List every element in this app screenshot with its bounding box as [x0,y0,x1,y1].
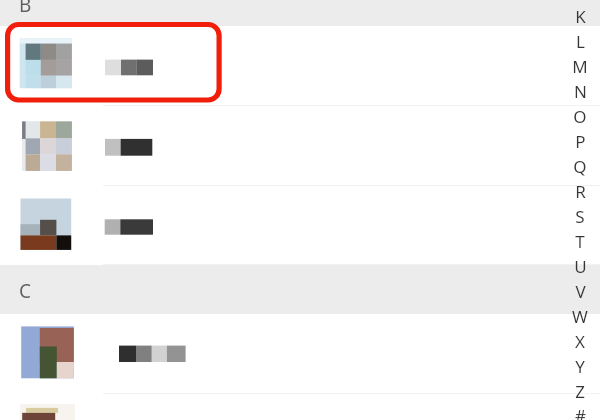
staticText: X [575,330,585,353]
staticText: Q [573,155,587,178]
staticText: B [19,0,32,18]
staticText: W [572,305,588,328]
staticText: V [575,280,586,303]
button[interactable] [0,314,600,394]
staticText: U [574,255,587,278]
staticText: Y [575,355,585,378]
staticText: N [574,80,587,103]
button[interactable]: C [0,265,600,314]
button[interactable] [0,394,600,420]
staticText: # [575,404,586,420]
button[interactable] [0,26,600,106]
staticText: Z [575,380,585,403]
staticText: C [19,278,32,304]
staticText: T [575,230,585,253]
staticText: M [572,55,588,78]
staticText: R [575,180,586,203]
button[interactable]: Scroll alphabetically [560,0,600,420]
staticText: O [573,105,587,128]
staticText: S [575,205,585,228]
button[interactable] [0,106,600,186]
staticText: L [576,30,585,53]
staticText: P [575,130,586,153]
staticText: K [575,5,586,28]
button[interactable]: B [0,0,600,26]
button[interactable] [0,186,600,265]
